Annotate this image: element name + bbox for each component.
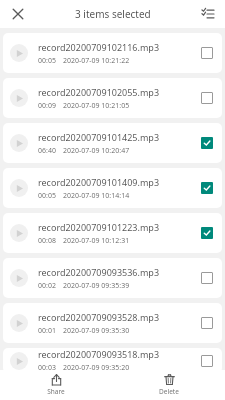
button[interactable]: record20200709093536.mp3 [3,258,222,298]
button[interactable]: record20200709093518.mp3 [3,348,222,373]
staticText: 2020-07-09 09:35:39 [63,281,130,291]
button[interactable]: record20200709102055.mp3 [3,78,222,118]
staticText: record20200709101223.mp3 [38,221,160,233]
staticText: 2020-07-09 09:35:30 [63,326,130,336]
staticText: record20200709093536.mp3 [38,266,160,278]
staticText: 00:05 [38,56,56,66]
staticText: 00:02 [38,281,56,291]
staticText: 00:08 [38,236,56,246]
staticText: 3 items selected [75,7,151,21]
staticText: Delete [159,387,179,396]
button[interactable]: record20200709101223.mp3 [3,213,222,253]
staticText: record20200709093528.mp3 [38,311,160,323]
staticText: 00:01 [38,326,56,336]
button[interactable]: record20200709102116.mp3 [3,33,222,73]
button[interactable]: record20200709101425.mp3 [3,123,222,163]
staticText: 00:05 [38,191,56,201]
staticText: Share [47,387,65,396]
button[interactable]: Not selected [192,303,222,343]
staticText: record20200709101409.mp3 [38,176,160,188]
staticText: 2020-07-09 10:12:31 [63,236,130,246]
button[interactable]: Not selected [192,348,222,373]
button[interactable]: Selected [192,213,222,253]
button[interactable]: Selected [192,168,222,208]
button[interactable]: Not selected [192,78,222,118]
staticText: record20200709102116.mp3 [38,41,160,53]
staticText: record20200709102055.mp3 [38,86,160,98]
staticText: record20200709093518.mp3 [38,348,160,360]
staticText: 00:09 [38,101,56,111]
button[interactable]: Delete [112,370,225,400]
staticText: 2020-07-09 10:21:05 [63,101,130,111]
button[interactable]: Share [0,370,112,400]
staticText: 2020-07-09 10:14:14 [63,191,130,201]
button[interactable]: Select all [191,0,225,28]
staticText: 2020-07-09 10:21:22 [63,56,130,66]
button[interactable]: record20200709101409.mp3 [3,168,222,208]
staticText: 2020-07-09 09:35:20 [63,363,130,373]
staticText: 2020-07-09 10:20:47 [63,146,130,156]
button[interactable]: record20200709093528.mp3 [3,303,222,343]
button[interactable]: Close [0,0,36,28]
button[interactable]: Selected [192,123,222,163]
button[interactable]: Not selected [192,258,222,298]
button[interactable]: Not selected [192,33,222,73]
staticText: 00:03 [38,363,56,373]
staticText: record20200709101425.mp3 [38,131,160,143]
staticText: 06:40 [38,146,56,156]
